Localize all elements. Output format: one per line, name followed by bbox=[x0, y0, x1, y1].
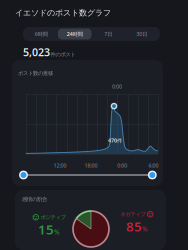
staticText: 6時間 bbox=[35, 30, 48, 38]
staticText: 5,023 bbox=[23, 45, 50, 59]
staticText: 6:00 bbox=[148, 162, 158, 169]
staticText: 0:00 bbox=[112, 83, 122, 90]
staticText: 30日 bbox=[136, 30, 147, 38]
button[interactable]: 30日 bbox=[125, 28, 158, 39]
button[interactable]: 7日 bbox=[91, 28, 125, 39]
staticText: % bbox=[142, 225, 148, 233]
staticText: 470件 bbox=[108, 137, 122, 144]
staticText: ネガティブ bbox=[120, 211, 145, 218]
staticText: 18:00 bbox=[85, 162, 98, 169]
staticText: 7日 bbox=[104, 30, 112, 38]
button[interactable]: 時間範囲 bbox=[19, 170, 157, 180]
staticText: ポスト数の推移 bbox=[18, 70, 53, 77]
staticText: 12:00 bbox=[53, 162, 66, 169]
staticText: 感情の割合 bbox=[22, 196, 47, 203]
staticText: 15 bbox=[38, 221, 54, 238]
button[interactable]: ネガティブ bbox=[114, 211, 160, 235]
staticText: ポジティブ bbox=[40, 214, 65, 221]
staticText: 件のポスト bbox=[50, 51, 75, 58]
button[interactable]: 24時間 bbox=[58, 28, 91, 39]
staticText: 24時間 bbox=[67, 30, 83, 38]
staticText: 0:00 bbox=[117, 162, 127, 169]
staticText: % bbox=[54, 228, 60, 236]
staticText: イエソドのポスト数グラフ bbox=[15, 8, 111, 18]
button[interactable]: ポジティブ bbox=[26, 214, 72, 238]
button[interactable]: 6時間 bbox=[24, 28, 58, 39]
staticText: 85 bbox=[126, 218, 142, 235]
